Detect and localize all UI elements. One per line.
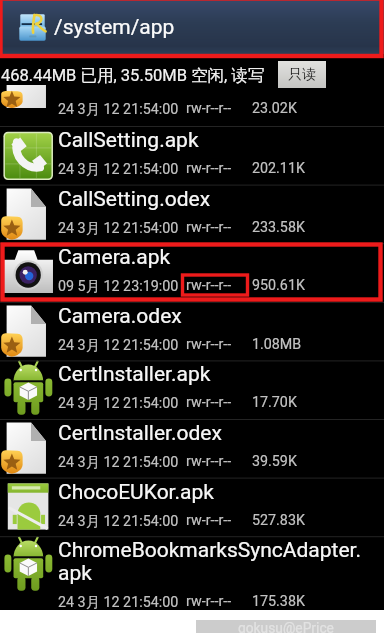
staticText: CertInstaller.apk xyxy=(58,362,366,387)
button[interactable]: CallSetting.odex xyxy=(0,185,384,244)
staticText: Camera.apk xyxy=(58,245,366,270)
staticText: ChocoEUKor.apk xyxy=(58,480,366,505)
staticText: rw-r--r-- xyxy=(186,593,232,610)
button[interactable]: ChromeBookmarksSyncAdapter.apk xyxy=(0,536,384,610)
staticText: 17.70K xyxy=(252,394,297,411)
button[interactable]: CertInstaller.odex xyxy=(0,419,384,478)
staticText: rw-r--r-- xyxy=(186,160,232,177)
staticText: /system/app xyxy=(54,15,175,40)
staticText: 468.44MB 已用, 35.50MB 空闲, 读写 xyxy=(1,65,265,86)
staticText: CallSetting.apk xyxy=(58,128,366,153)
staticText: 24 3月 12 21:54:00 xyxy=(58,160,179,178)
staticText: 527.83K xyxy=(252,512,305,529)
staticText: gokusu@ePrice xyxy=(238,620,334,633)
staticText: 24 3月 12 21:54:00 xyxy=(58,219,179,237)
staticText: 24 3月 12 21:54:00 xyxy=(58,394,179,412)
button[interactable]: CallSetting.apk xyxy=(0,126,384,185)
button[interactable]: Camera.apk xyxy=(0,243,384,302)
staticText: Camera.odex xyxy=(58,304,366,329)
staticText: rw-r--r-- xyxy=(186,219,232,236)
button[interactable]: Camera.odex xyxy=(0,302,384,361)
other: Root Explorer xyxy=(16,11,49,44)
staticText: 175.38K xyxy=(252,593,305,610)
button[interactable]: 24 3月 12 21:54:00 xyxy=(0,85,384,126)
staticText: 09 5月 12 23:19:00 xyxy=(58,277,179,295)
staticText: 24 3月 12 21:54:00 xyxy=(58,336,179,354)
staticText: 只读 xyxy=(288,66,316,84)
staticText: 233.58K xyxy=(252,219,305,236)
button[interactable]: 只读 xyxy=(278,61,326,88)
staticText: rw-r--r-- xyxy=(186,277,232,294)
staticText: ChromeBookmarksSyncAdapter.apk xyxy=(58,538,366,585)
staticText: rw-r--r-- xyxy=(186,394,232,411)
button[interactable]: Root Explorer xyxy=(0,0,384,54)
staticText: 202.11K xyxy=(252,160,305,177)
staticText: rw-r--r-- xyxy=(186,336,232,353)
staticText: 24 3月 12 21:54:00 xyxy=(58,593,179,611)
staticText: 24 3月 12 21:54:00 xyxy=(58,512,179,530)
button[interactable]: CertInstaller.apk xyxy=(0,360,384,419)
staticText: CertInstaller.odex xyxy=(58,421,366,446)
staticText: rw-r--r-- xyxy=(186,100,232,117)
staticText: 950.61K xyxy=(252,277,305,294)
staticText: 24 3月 12 21:54:00 xyxy=(58,100,179,118)
staticText: 39.59K xyxy=(252,453,297,470)
staticText: rw-r--r-- xyxy=(186,512,232,529)
staticText: 24 3月 12 21:54:00 xyxy=(58,453,179,471)
button[interactable]: ChocoEUKor.apk xyxy=(0,478,384,537)
staticText: rw-r--r-- xyxy=(186,453,232,470)
staticText: 23.02K xyxy=(252,100,297,117)
staticText: 1.08MB xyxy=(252,336,302,353)
staticText: CallSetting.odex xyxy=(58,187,366,212)
